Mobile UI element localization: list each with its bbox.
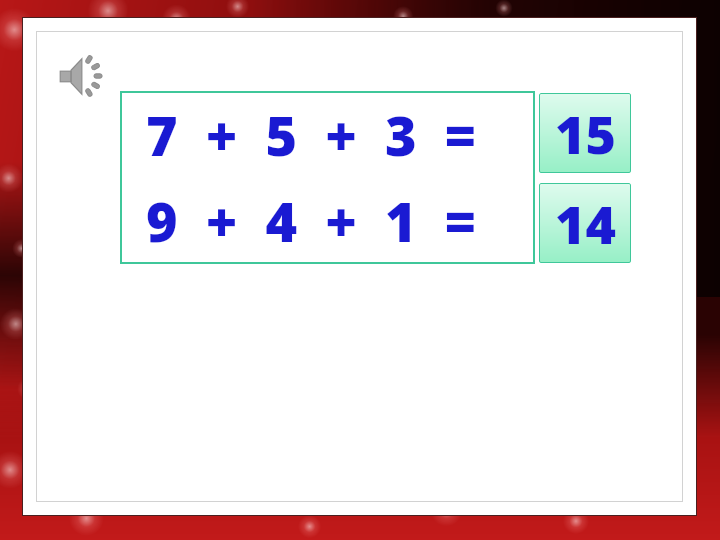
button[interactable]: Play sound xyxy=(57,52,111,100)
button[interactable]: 14 xyxy=(539,183,631,263)
button[interactable]: 15 xyxy=(539,93,631,173)
staticText: 7 + 5 + 3 = xyxy=(146,98,535,172)
staticText: 9 + 4 + 1 = xyxy=(146,184,535,258)
staticText: 15 xyxy=(555,98,616,169)
button[interactable]: 7 + 5 + 3 = xyxy=(120,91,535,264)
staticText: 14 xyxy=(555,188,616,259)
